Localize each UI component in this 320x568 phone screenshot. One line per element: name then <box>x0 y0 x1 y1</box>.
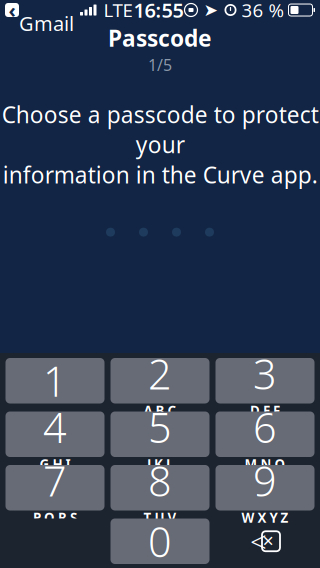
button[interactable]: 7 <box>5 465 104 510</box>
staticText: Gmail <box>19 0 74 36</box>
button[interactable]: 9 <box>215 465 314 510</box>
staticText: Passcode <box>108 23 212 53</box>
button[interactable]: 6 <box>215 411 314 457</box>
button[interactable]: 3 <box>215 358 314 403</box>
staticText: 8 <box>148 453 172 508</box>
staticText: 16:55 <box>133 0 183 23</box>
staticText: G H I <box>39 455 70 473</box>
staticText: 1/5 <box>148 54 172 75</box>
staticText: ‹ <box>8 0 15 23</box>
button[interactable]: 8 <box>110 465 209 510</box>
button[interactable]: 1 <box>5 358 104 403</box>
staticText: 3 <box>253 346 277 401</box>
staticText: 36 % <box>241 0 284 22</box>
staticText: A B C <box>143 402 176 419</box>
staticText: 1 <box>43 353 67 408</box>
staticText: 2 <box>148 346 172 401</box>
staticText: ➤ <box>203 0 218 20</box>
staticText: 9 <box>253 453 277 508</box>
staticText: 4 <box>43 399 67 454</box>
staticText: M N O <box>244 455 285 473</box>
staticText: T U V <box>143 509 176 526</box>
staticText: P Q R S <box>33 509 77 526</box>
staticText: < <box>250 522 267 561</box>
staticText: 6 <box>253 399 277 454</box>
staticText: LTE <box>103 0 132 22</box>
button[interactable]: 2 <box>110 358 209 403</box>
staticText: D E F <box>250 402 280 419</box>
staticText: J K L <box>147 455 173 473</box>
staticText: ✕ <box>262 533 274 549</box>
button[interactable]: 0 <box>110 518 209 564</box>
button[interactable]: 5 <box>110 411 209 457</box>
button[interactable]: 4 <box>5 411 104 457</box>
staticText: 5 <box>148 399 172 454</box>
staticText: W X Y Z <box>241 509 288 526</box>
staticText: 7 <box>43 453 67 508</box>
staticText: 0 <box>148 514 172 568</box>
staticText: Choose a passcode to protect your inform… <box>1 99 318 190</box>
button[interactable]: Delete <box>215 518 314 564</box>
